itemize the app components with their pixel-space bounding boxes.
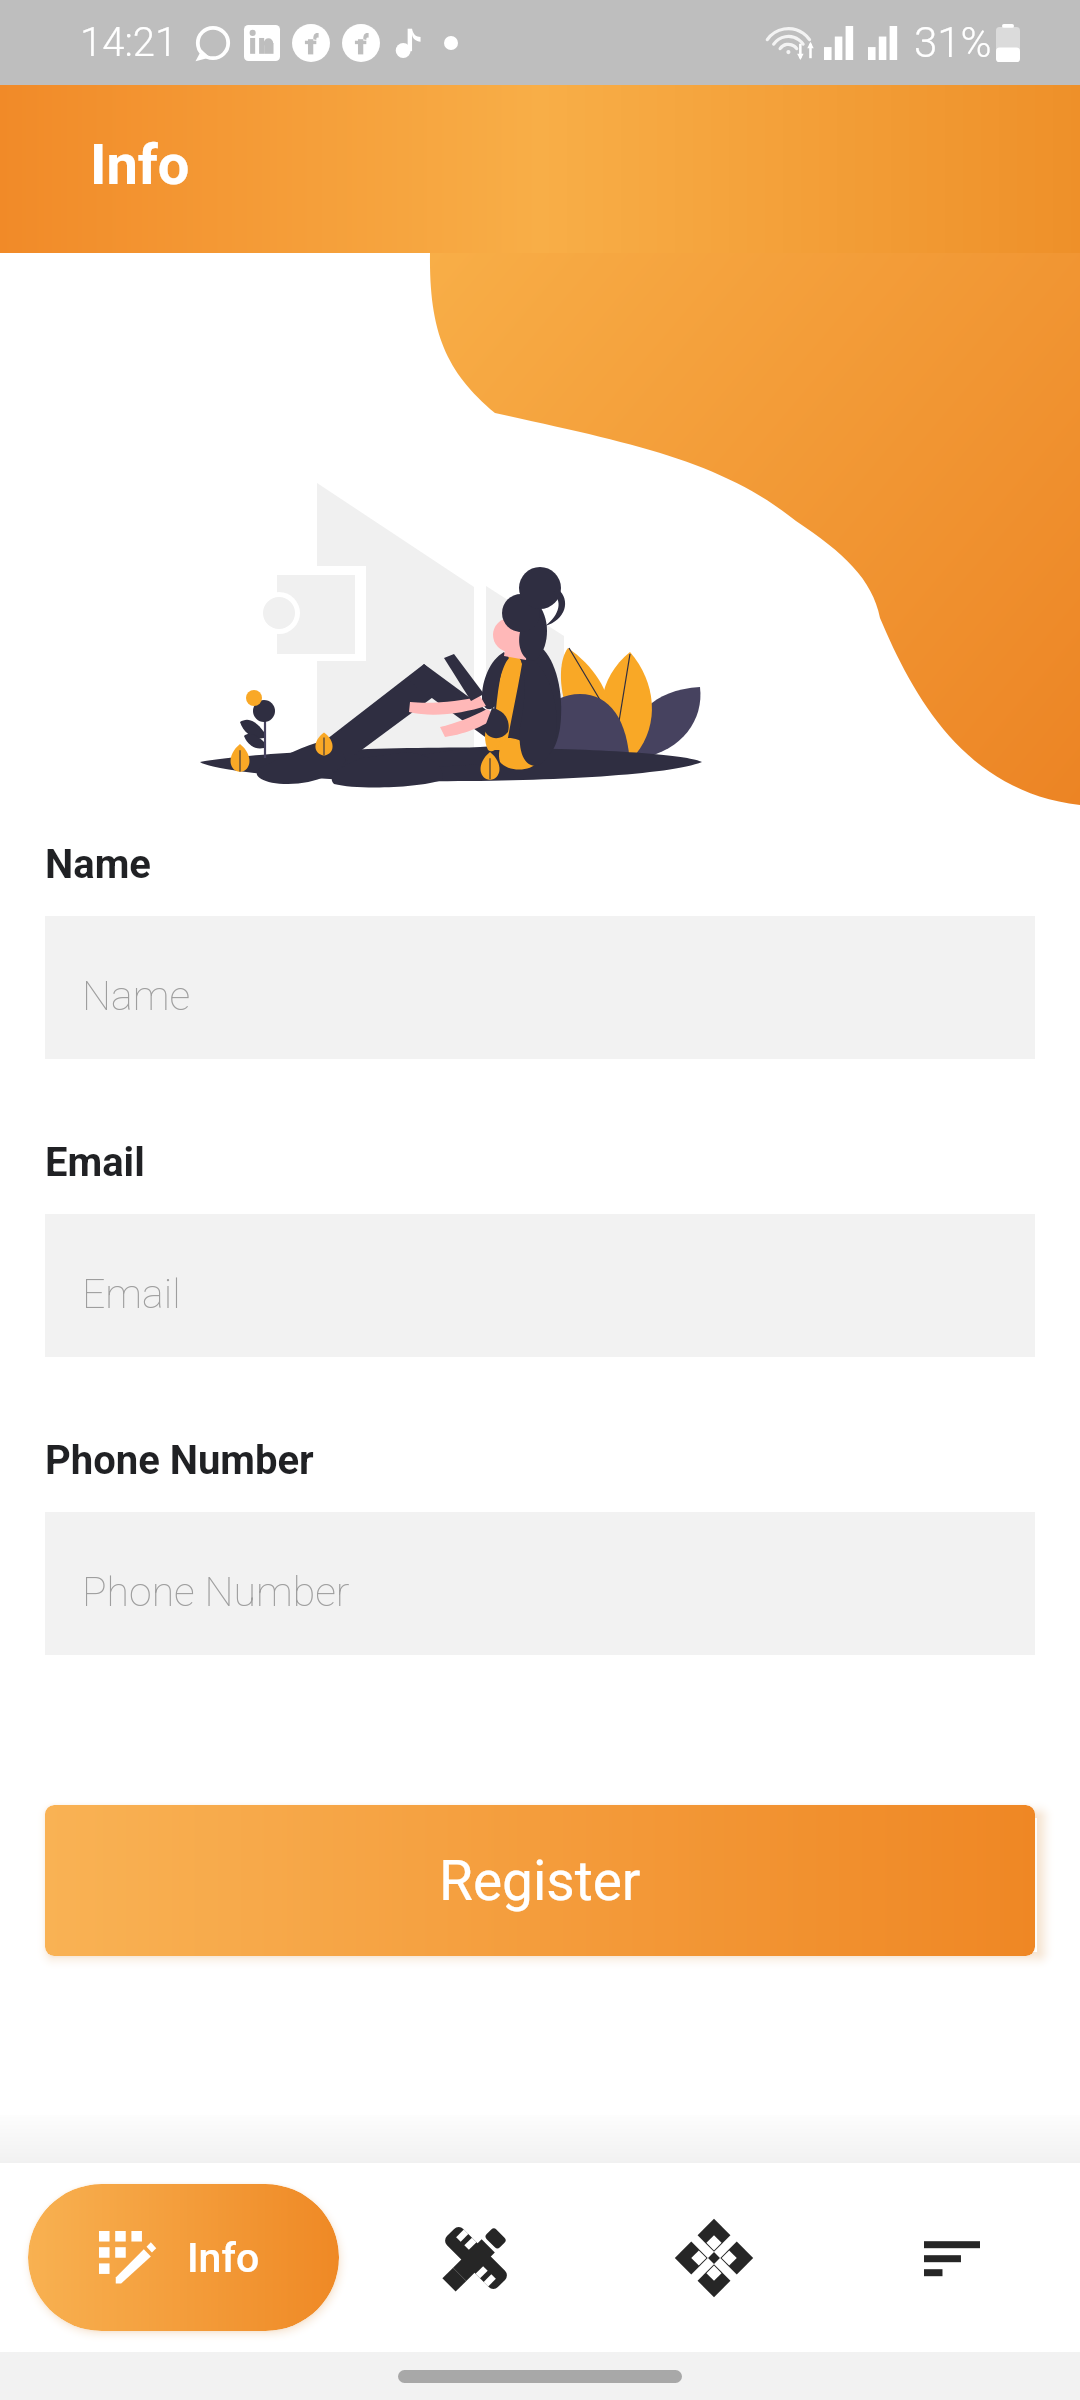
staticText: Phone Number	[82, 1568, 350, 1616]
staticText: 31%	[914, 18, 992, 67]
staticText: 14:21	[80, 19, 178, 66]
staticText: Phone Number	[45, 1437, 314, 1484]
button[interactable]: Phone Number	[45, 1512, 1035, 1655]
staticText: Register	[439, 1849, 641, 1913]
button[interactable]: Move	[659, 2203, 769, 2313]
button[interactable]: Email	[45, 1214, 1035, 1357]
button[interactable]: Info	[28, 2184, 339, 2331]
staticText: Info	[187, 2234, 260, 2282]
button[interactable]: Design	[421, 2203, 531, 2313]
staticText: Email	[82, 1270, 181, 1318]
button[interactable]: Name	[45, 916, 1035, 1059]
staticText: Name	[82, 972, 191, 1020]
staticText: Name	[45, 841, 151, 888]
staticText: Info	[90, 132, 190, 198]
staticText: Email	[45, 1139, 145, 1186]
button[interactable]: Sort	[897, 2203, 1007, 2313]
button[interactable]: Register	[45, 1805, 1035, 1956]
